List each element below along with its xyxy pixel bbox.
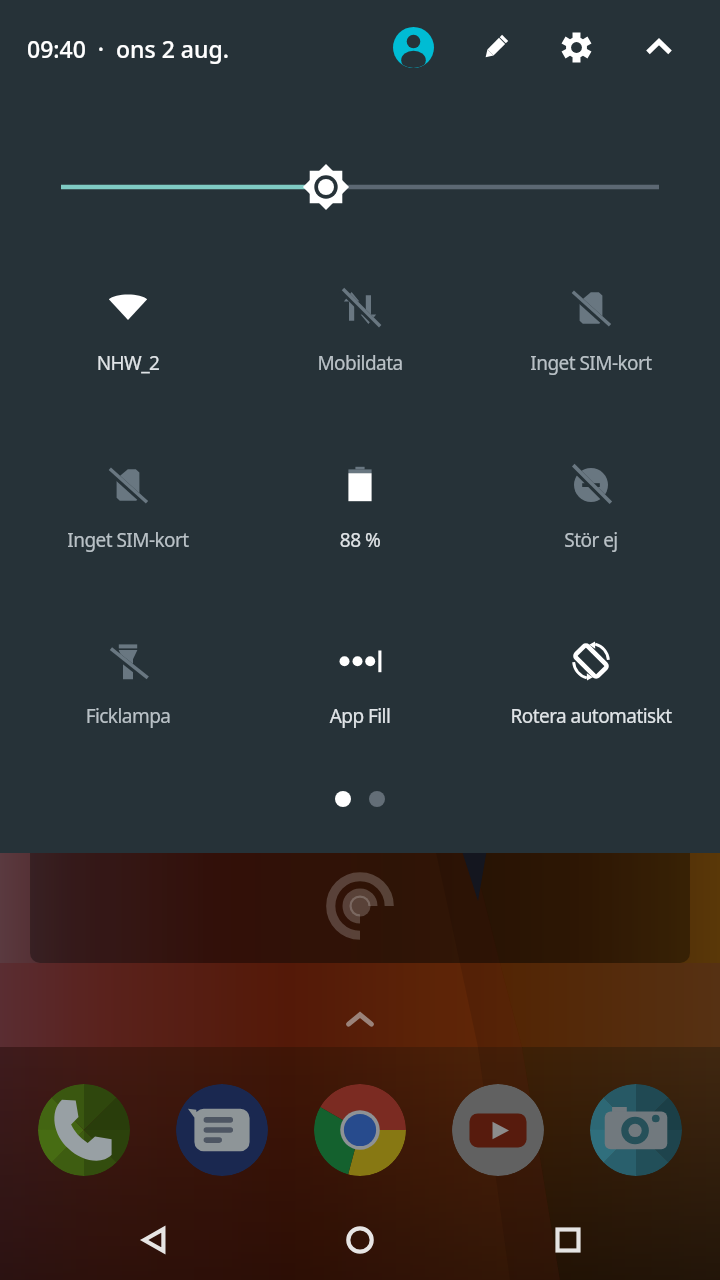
staticText: 88 % bbox=[244, 527, 476, 553]
button[interactable] bbox=[30, 790, 690, 963]
button[interactable] bbox=[12, 258, 244, 366]
button[interactable] bbox=[475, 435, 707, 543]
staticText: Stör ej bbox=[475, 527, 707, 553]
button[interactable] bbox=[12, 611, 244, 719]
button[interactable]: Messages bbox=[176, 1084, 268, 1176]
staticText: 09:40 · ons 2 aug. bbox=[27, 33, 229, 64]
staticText: Inget SIM-kort bbox=[12, 527, 244, 553]
button[interactable] bbox=[475, 611, 707, 719]
button[interactable]: Home bbox=[336, 1216, 384, 1264]
button[interactable] bbox=[244, 611, 476, 719]
button[interactable]: Chrome bbox=[314, 1084, 406, 1176]
button[interactable] bbox=[12, 435, 244, 543]
staticText: Mobildata bbox=[244, 350, 476, 376]
button[interactable]: Open app drawer bbox=[336, 996, 384, 1044]
staticText: App Fill bbox=[244, 703, 476, 729]
button[interactable] bbox=[0, 150, 720, 226]
button[interactable]: Settings bbox=[552, 23, 600, 71]
staticText: Ficklampa bbox=[12, 703, 244, 729]
button[interactable]: Back bbox=[131, 1216, 179, 1264]
button[interactable]: Camera bbox=[590, 1084, 682, 1176]
button[interactable] bbox=[244, 435, 476, 543]
button[interactable]: Phone bbox=[38, 1084, 130, 1176]
button[interactable]: YouTube bbox=[452, 1084, 544, 1176]
button[interactable] bbox=[475, 258, 707, 366]
staticText: NHW_2 bbox=[12, 350, 244, 376]
staticText: Rotera automatiskt bbox=[475, 703, 707, 729]
button[interactable]: Collapse bbox=[635, 23, 683, 71]
button[interactable] bbox=[244, 258, 476, 366]
button[interactable]: Recent apps bbox=[544, 1216, 592, 1264]
staticText: Inget SIM-kort bbox=[475, 350, 707, 376]
button[interactable]: User profile bbox=[389, 23, 437, 71]
button[interactable]: Edit bbox=[471, 23, 519, 71]
